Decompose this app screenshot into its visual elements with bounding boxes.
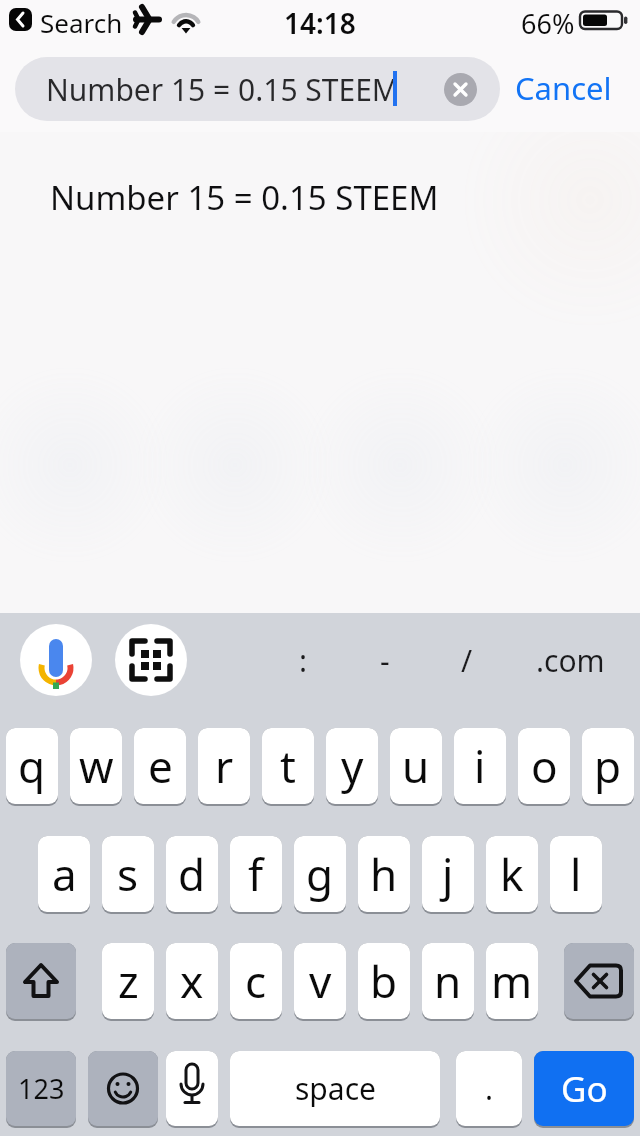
staticText: u	[402, 736, 430, 796]
staticText: h	[370, 844, 398, 904]
button[interactable]: .	[456, 1051, 522, 1128]
button[interactable]: a	[38, 836, 90, 914]
staticText: /	[461, 640, 473, 681]
button[interactable]: :	[273, 625, 333, 695]
button[interactable]: i	[454, 728, 506, 806]
staticText: c	[245, 951, 267, 1011]
button[interactable]: f	[230, 836, 282, 914]
staticText: .com	[536, 640, 605, 681]
staticText: t	[280, 736, 296, 796]
button[interactable]	[6, 943, 76, 1021]
button[interactable]: /	[437, 625, 497, 695]
button[interactable]: m	[486, 943, 538, 1021]
button[interactable]: l	[550, 836, 602, 914]
button[interactable]: y	[326, 728, 378, 806]
staticText: Go	[561, 1065, 608, 1113]
staticText: k	[500, 844, 524, 904]
button[interactable]: e	[134, 728, 186, 806]
staticText: s	[117, 844, 139, 904]
button[interactable]: u	[390, 728, 442, 806]
staticText: a	[52, 844, 77, 904]
button[interactable]: Number 15 = 0.15 STEEM	[0, 168, 640, 226]
button[interactable]: r	[198, 728, 250, 806]
staticText: Search	[40, 5, 123, 40]
button[interactable]	[444, 73, 477, 106]
staticText: Number 15 = 0.15 STEEM	[50, 175, 439, 220]
button[interactable]: space	[230, 1051, 440, 1128]
button[interactable]: g	[294, 836, 346, 914]
button[interactable]	[166, 1051, 218, 1128]
staticText: l	[570, 844, 582, 904]
button[interactable]	[564, 943, 634, 1021]
button[interactable]: x	[166, 943, 218, 1021]
button[interactable]: .com	[524, 625, 616, 695]
staticText: f	[248, 844, 264, 904]
staticText: n	[434, 951, 462, 1011]
button[interactable]	[20, 624, 92, 696]
button[interactable]: w	[70, 728, 122, 806]
staticText: 14:18	[284, 4, 356, 42]
button[interactable]: v	[294, 943, 346, 1021]
button[interactable]: -	[355, 625, 415, 695]
button[interactable]: d	[166, 836, 218, 914]
staticText: p	[594, 736, 622, 796]
button[interactable]: Number 15 = 0.15 STEEM	[15, 57, 500, 121]
staticText: m	[491, 951, 533, 1011]
staticText: v	[309, 951, 332, 1011]
button[interactable]: b	[358, 943, 410, 1021]
button[interactable]: h	[358, 836, 410, 914]
button[interactable]: s	[102, 836, 154, 914]
staticText: Number 15 = 0.15 STEEM	[46, 69, 400, 110]
button[interactable]: n	[422, 943, 474, 1021]
staticText: d	[178, 844, 206, 904]
staticText: x	[180, 951, 204, 1011]
staticText: e	[148, 736, 173, 796]
button[interactable]: q	[6, 728, 58, 806]
button[interactable]: Cancel	[508, 65, 618, 111]
button[interactable]: c	[230, 943, 282, 1021]
staticText: space	[295, 1068, 376, 1109]
staticText: -	[380, 640, 390, 681]
staticText: :	[299, 640, 308, 681]
button[interactable]: k	[486, 836, 538, 914]
staticText: i	[474, 736, 486, 796]
button[interactable]: t	[262, 728, 314, 806]
button[interactable]: o	[518, 728, 570, 806]
staticText: g	[306, 844, 334, 904]
staticText: b	[370, 951, 398, 1011]
button[interactable]	[115, 624, 187, 696]
staticText: 66%	[521, 5, 575, 42]
staticText: j	[442, 844, 454, 904]
staticText: q	[18, 736, 46, 796]
staticText: .	[485, 1068, 494, 1109]
staticText: o	[531, 736, 558, 796]
staticText: r	[215, 736, 234, 796]
staticText: z	[118, 951, 139, 1011]
button[interactable]: p	[582, 728, 634, 806]
staticText: 123	[18, 1070, 65, 1107]
button[interactable]: z	[102, 943, 154, 1021]
staticText: y	[341, 736, 364, 796]
staticText: w	[79, 736, 114, 796]
button[interactable]: j	[422, 836, 474, 914]
button[interactable]: 123	[6, 1051, 76, 1128]
staticText: Cancel	[515, 67, 612, 109]
button[interactable]	[9, 8, 32, 31]
button[interactable]: Go	[534, 1051, 634, 1128]
button[interactable]	[88, 1051, 158, 1128]
